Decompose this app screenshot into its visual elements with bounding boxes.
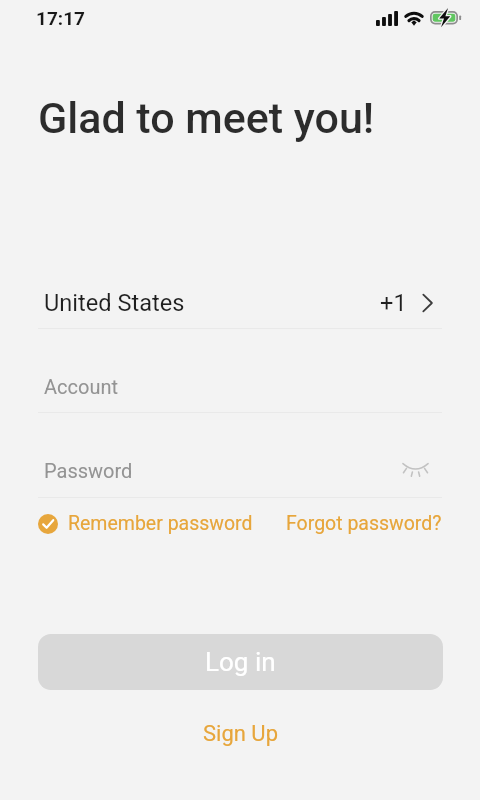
staticText: Account — [44, 375, 119, 398]
staticText: Forgot password? — [286, 512, 442, 535]
button[interactable]: United States — [44, 282, 442, 324]
button[interactable]: Sign Up — [185, 714, 296, 754]
button[interactable]: Remember password — [38, 506, 253, 541]
staticText: 17:17 — [36, 7, 85, 29]
staticText: +1 — [380, 289, 407, 317]
staticText: Password — [44, 459, 133, 482]
button[interactable]: Password — [44, 449, 395, 491]
staticText: Log in — [205, 647, 276, 677]
staticText: Sign Up — [203, 721, 278, 747]
button[interactable]: Log in — [38, 634, 443, 690]
staticText: United States — [44, 289, 185, 317]
button[interactable]: Account — [44, 365, 442, 407]
staticText: Glad to meet you! — [38, 93, 375, 143]
button[interactable]: Forgot password? — [286, 506, 442, 541]
staticText: Remember password — [68, 512, 253, 535]
button[interactable]: Show password — [395, 450, 435, 490]
